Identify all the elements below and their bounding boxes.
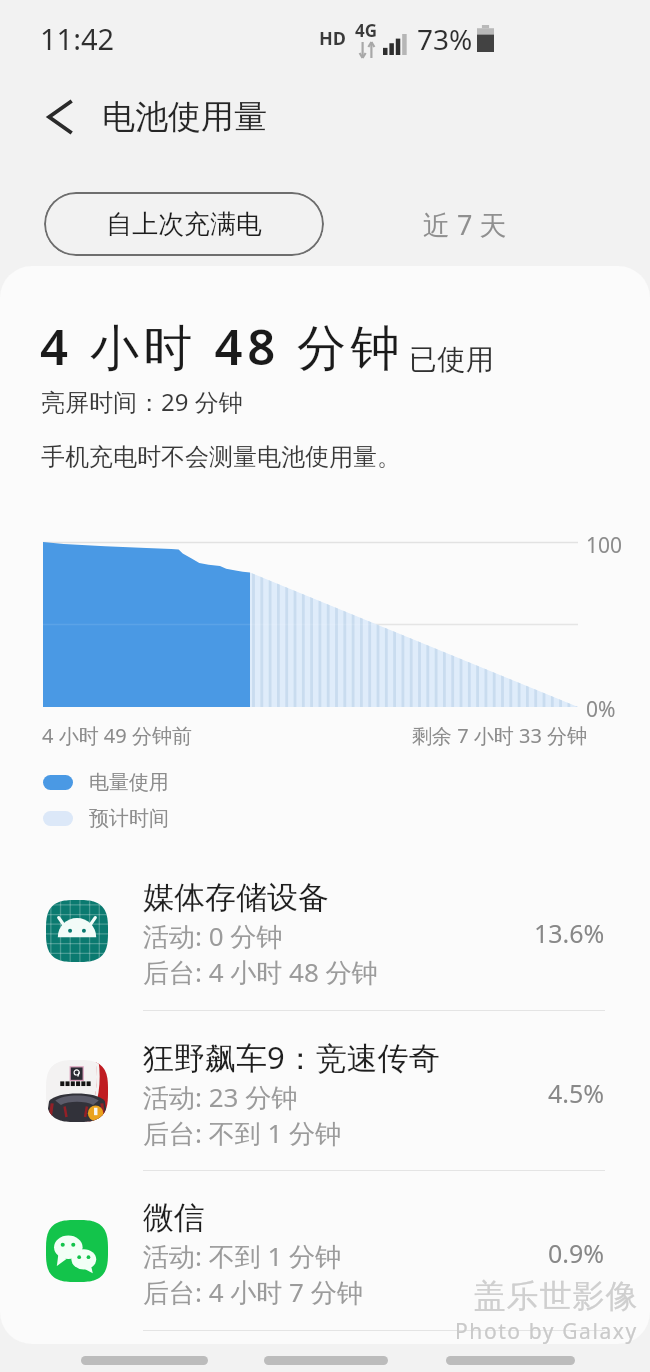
staticText: 4.5% (548, 1076, 605, 1110)
staticText: 13.6% (534, 916, 605, 950)
button[interactable]: 媒体存储设备 (0, 851, 650, 1010)
staticText: 0.9% (548, 1236, 605, 1270)
staticText: 4G (355, 19, 378, 42)
staticText: 0% (586, 695, 616, 724)
button[interactable]: Back (446, 1356, 575, 1365)
staticText: 狂野飙车9：竞速传奇 (143, 1036, 440, 1078)
staticText: HD (319, 26, 346, 51)
staticText: 4 小时 48 分钟 (40, 313, 405, 380)
staticText: 电池使用量 (102, 96, 267, 138)
button[interactable]: Home (264, 1356, 388, 1365)
button[interactable]: 自上次充满电 (44, 192, 324, 256)
staticText: 亮屏时间：29 分钟 (41, 385, 243, 418)
button[interactable]: 狂野飙车9：竞速传奇 (0, 1011, 650, 1170)
staticText: 剩余 7 小时 33 分钟 (412, 722, 588, 749)
staticText: 自上次充满电 (106, 208, 262, 241)
button[interactable]: 微信 (0, 1171, 650, 1330)
staticText: 11:42 (40, 19, 115, 58)
staticText: 电量使用 (89, 770, 169, 795)
staticText: 后台: 不到 1 分钟 (143, 1115, 342, 1151)
staticText: 媒体存储设备 (143, 878, 329, 917)
staticText: 微信 (143, 1198, 205, 1237)
staticText: 手机充电时不会测量电池使用量。 (41, 442, 401, 472)
staticText: 盖乐世影像 (473, 1276, 638, 1316)
button[interactable]: Recents (81, 1356, 208, 1365)
staticText: 100 (586, 531, 623, 560)
staticText: 预计时间 (89, 806, 169, 831)
button[interactable]: 近 7 天 (384, 192, 546, 256)
button[interactable]: Back (18, 75, 102, 159)
staticText: 后台: 4 小时 48 分钟 (143, 954, 378, 990)
staticText: 活动: 不到 1 分钟 (143, 1238, 342, 1274)
staticText: 4 小时 49 分钟前 (42, 722, 192, 749)
staticText: 活动: 0 分钟 (143, 918, 283, 954)
staticText: Photo by Galaxy (455, 1317, 638, 1346)
staticText: 已使用 (409, 342, 495, 377)
staticText: 后台: 4 小时 7 分钟 (143, 1274, 363, 1310)
staticText: 近 7 天 (423, 206, 507, 243)
staticText: 活动: 23 分钟 (143, 1079, 298, 1115)
staticText: 73% (417, 20, 473, 58)
